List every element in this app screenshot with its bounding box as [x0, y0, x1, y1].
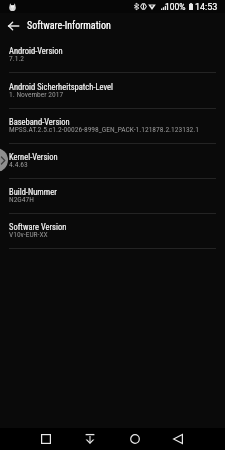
- button[interactable]: Software Version: [0, 214, 225, 249]
- button[interactable]: Kernel-Version: [0, 144, 225, 179]
- staticText: Baseband-Version: [9, 117, 70, 127]
- button[interactable]: Recents: [26, 428, 66, 450]
- staticText: 1. November 2017: [9, 90, 64, 99]
- button[interactable]: Home: [115, 428, 155, 450]
- staticText: 7.1.2: [9, 54, 25, 63]
- button[interactable]: Android-Version: [0, 38, 225, 73]
- staticText: Software Version: [9, 222, 67, 232]
- staticText: Software-Information: [27, 20, 111, 32]
- staticText: Build-Nummer: [9, 187, 57, 197]
- staticText: 4.4.63: [9, 160, 28, 169]
- staticText: Android Sicherheitspatch-Level: [9, 82, 113, 92]
- button[interactable]: Android Sicherheitspatch-Level: [0, 74, 225, 109]
- staticText: V10v-EUR-XX: [9, 230, 48, 239]
- staticText: 100%: [165, 2, 186, 12]
- button[interactable]: Back gesture handle: [0, 148, 8, 172]
- button[interactable]: Baseband-Version: [0, 109, 225, 144]
- staticText: Android-Version: [9, 46, 63, 56]
- staticText: 14:53: [195, 2, 218, 13]
- staticText: MPSS.AT.2.5.c1.2-00026-8998_GEN_PACK-1.1…: [9, 125, 199, 134]
- button[interactable]: Back: [158, 428, 198, 450]
- staticText: N2G47H: [9, 195, 34, 204]
- button[interactable]: Hide keyboard: [70, 428, 110, 450]
- button[interactable]: Back: [1, 14, 25, 38]
- staticText: Kernel-Version: [9, 152, 58, 162]
- button[interactable]: Build-Nummer: [0, 179, 225, 214]
